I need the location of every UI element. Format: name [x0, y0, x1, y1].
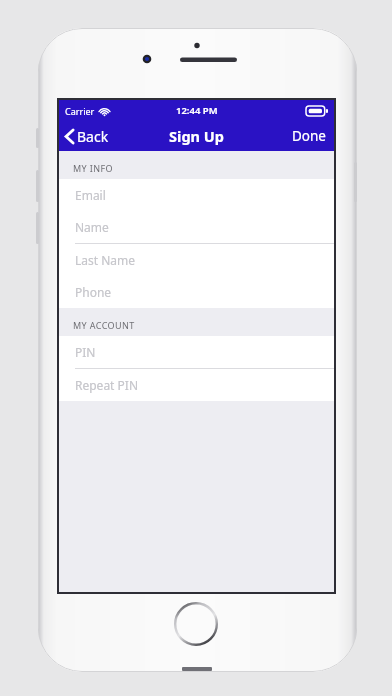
button[interactable]: Repeat PIN [59, 369, 334, 401]
button[interactable]: Done [284, 121, 334, 151]
staticText: Sign Up [169, 126, 224, 146]
staticText: Repeat PIN [75, 377, 139, 393]
button[interactable]: PIN [59, 336, 334, 368]
button[interactable]: Last Name [59, 244, 334, 276]
staticText: MY ACCOUNT [73, 319, 135, 331]
button[interactable]: Email [59, 179, 334, 211]
other: Home [173, 601, 219, 647]
staticText: Last Name [75, 252, 136, 268]
staticText: Done [292, 127, 326, 145]
staticText: Email [75, 187, 106, 203]
staticText: Back [77, 127, 109, 146]
staticText: Name [75, 219, 109, 235]
button[interactable]: Name [59, 211, 334, 243]
staticText: MY INFO [73, 162, 113, 174]
staticText: Phone [75, 284, 112, 300]
button[interactable]: Back [59, 121, 117, 151]
staticText: Carrier [65, 105, 95, 117]
staticText: PIN [75, 344, 96, 360]
staticText: 12:44 PM [176, 104, 218, 117]
button[interactable]: Phone [59, 276, 334, 308]
